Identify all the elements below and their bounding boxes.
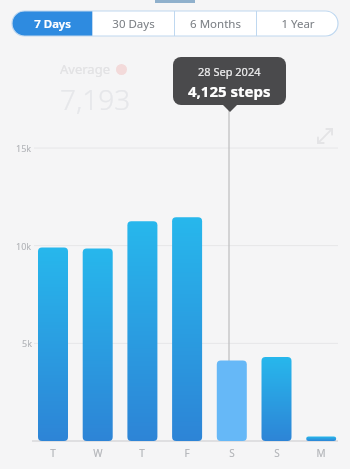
button[interactable]: 6 Months (175, 11, 256, 36)
button[interactable]: Expand chart (314, 125, 336, 147)
staticText: S (229, 446, 235, 460)
staticText: M (316, 446, 326, 460)
staticText: 6 Months (190, 16, 241, 32)
staticText: F (184, 446, 190, 460)
staticText: 4,125 steps (188, 81, 271, 101)
button[interactable]: 1 Year (257, 11, 338, 36)
staticText: 5k (22, 337, 32, 349)
staticText: 7,193 (60, 80, 131, 118)
staticText: 1 Year (281, 16, 315, 32)
staticText: S (274, 446, 280, 460)
staticText: 15k (16, 142, 32, 154)
button[interactable]: 30 Days (93, 11, 174, 36)
staticText: 7 Days (34, 16, 71, 32)
button[interactable]: 7 Days (12, 11, 92, 36)
staticText: Average (60, 60, 110, 78)
button[interactable]: 28 Sep 2024 (173, 57, 286, 105)
staticText: T (139, 446, 145, 460)
staticText: W (93, 446, 103, 460)
staticText: 30 Days (112, 16, 155, 32)
staticText: 10k (16, 240, 32, 252)
staticText: 28 Sep 2024 (198, 64, 261, 79)
staticText: T (50, 446, 56, 460)
